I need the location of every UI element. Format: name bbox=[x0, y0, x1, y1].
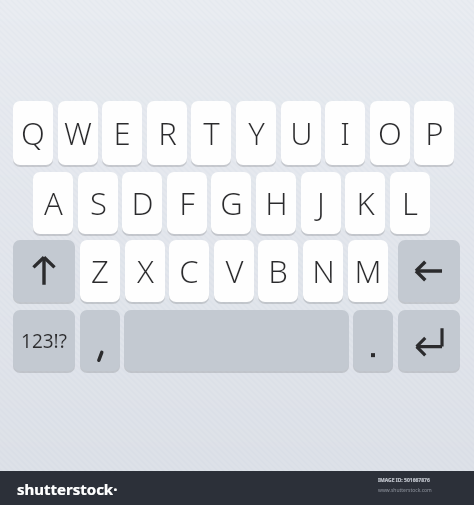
button[interactable]: U bbox=[281, 101, 321, 165]
button[interactable]: K bbox=[345, 172, 385, 234]
button[interactable]: I bbox=[325, 101, 365, 165]
staticText: C bbox=[179, 250, 199, 292]
button[interactable]: Comma bbox=[80, 310, 120, 371]
button[interactable]: Enter bbox=[398, 310, 460, 371]
staticText: T bbox=[203, 112, 220, 154]
button[interactable]: S bbox=[78, 172, 118, 234]
button[interactable]: 123!? bbox=[13, 310, 75, 371]
button[interactable]: G bbox=[211, 172, 251, 234]
button[interactable]: F bbox=[167, 172, 207, 234]
button[interactable]: X bbox=[125, 240, 165, 302]
button[interactable]: Y bbox=[236, 101, 276, 165]
staticText: R bbox=[158, 112, 177, 154]
button[interactable]: C bbox=[169, 240, 209, 302]
staticText: S bbox=[90, 182, 107, 224]
staticText: Q bbox=[21, 112, 45, 154]
staticText: N bbox=[312, 250, 335, 292]
staticText: E bbox=[113, 112, 131, 154]
staticText: J bbox=[317, 182, 325, 224]
staticText: A bbox=[44, 182, 63, 224]
staticText: V bbox=[225, 250, 244, 292]
button[interactable]: N bbox=[303, 240, 343, 302]
button[interactable]: Z bbox=[80, 240, 120, 302]
staticText: P bbox=[425, 112, 444, 154]
staticText: I bbox=[340, 112, 350, 154]
staticText: L bbox=[402, 182, 418, 224]
staticText: F bbox=[179, 182, 195, 224]
button[interactable]: V bbox=[214, 240, 254, 302]
staticText: 123!? bbox=[21, 328, 67, 354]
staticText: Z bbox=[91, 250, 109, 292]
button[interactable]: T bbox=[191, 101, 231, 165]
button[interactable]: W bbox=[58, 101, 98, 165]
staticText: Y bbox=[248, 112, 265, 154]
staticText: G bbox=[220, 182, 243, 224]
button[interactable]: O bbox=[370, 101, 410, 165]
button[interactable]: M bbox=[348, 240, 388, 302]
staticText: shutterstock· bbox=[17, 479, 118, 499]
staticText: O bbox=[378, 112, 402, 154]
staticText: K bbox=[356, 182, 375, 224]
button[interactable]: H bbox=[256, 172, 296, 234]
staticText: www.shutterstock.com bbox=[378, 487, 432, 494]
button[interactable]: J bbox=[301, 172, 341, 234]
staticText: M bbox=[354, 250, 382, 292]
staticText: B bbox=[268, 250, 288, 292]
button[interactable]: P bbox=[414, 101, 454, 165]
staticText: D bbox=[131, 182, 154, 224]
button[interactable]: Q bbox=[13, 101, 53, 165]
button[interactable]: Period bbox=[353, 310, 393, 371]
staticText: H bbox=[265, 182, 288, 224]
button[interactable]: E bbox=[102, 101, 142, 165]
staticText: U bbox=[290, 112, 313, 154]
staticText: IMAGE ID: 501667876 bbox=[378, 477, 430, 484]
button[interactable]: L bbox=[390, 172, 430, 234]
button[interactable]: Backspace bbox=[398, 240, 460, 302]
button[interactable]: R bbox=[147, 101, 187, 165]
staticText: X bbox=[137, 250, 154, 292]
staticText: W bbox=[64, 112, 92, 154]
button[interactable]: A bbox=[33, 172, 73, 234]
button[interactable]: Shift bbox=[13, 240, 75, 302]
button[interactable]: D bbox=[122, 172, 162, 234]
button[interactable]: B bbox=[258, 240, 298, 302]
